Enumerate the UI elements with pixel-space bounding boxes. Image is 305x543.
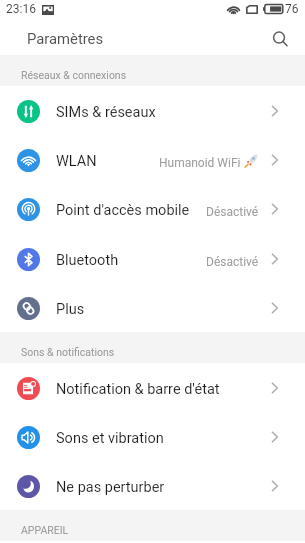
staticText: Désactivé xyxy=(206,205,259,219)
staticText: Bluetooth xyxy=(56,252,119,269)
button[interactable]: Bluetooth xyxy=(0,234,305,283)
button[interactable]: WLAN xyxy=(0,135,305,184)
button[interactable]: Rechercher xyxy=(265,24,295,54)
button[interactable]: Ne pas perturber xyxy=(0,461,305,510)
staticText: Paramètres xyxy=(27,30,104,47)
button[interactable]: SIMs & réseaux xyxy=(0,86,305,135)
button[interactable]: Sons et vibration xyxy=(0,412,305,461)
button[interactable]: Plus xyxy=(0,283,305,332)
staticText: Point d'accès mobile xyxy=(56,202,190,219)
button[interactable]: Point d'accès mobile xyxy=(0,184,305,233)
staticText: Sons et vibration xyxy=(56,430,164,447)
button[interactable]: Notification & barre d'état xyxy=(0,363,305,412)
staticText: Ne pas perturber xyxy=(56,479,165,496)
staticText: APPAREIL xyxy=(21,524,69,536)
staticText: 76 xyxy=(285,2,299,16)
staticText: Notification & barre d'état xyxy=(56,381,220,398)
staticText: Plus xyxy=(56,301,85,318)
staticText: Sons & notifications xyxy=(21,346,115,358)
staticText: Réseaux & connexions xyxy=(21,69,127,81)
staticText: WLAN xyxy=(56,153,97,170)
staticText: Désactivé xyxy=(206,255,259,269)
staticText: 23:16 xyxy=(6,2,36,16)
staticText: SIMs & réseaux xyxy=(56,104,156,121)
staticText: Humanoid WiFi xyxy=(159,156,241,170)
